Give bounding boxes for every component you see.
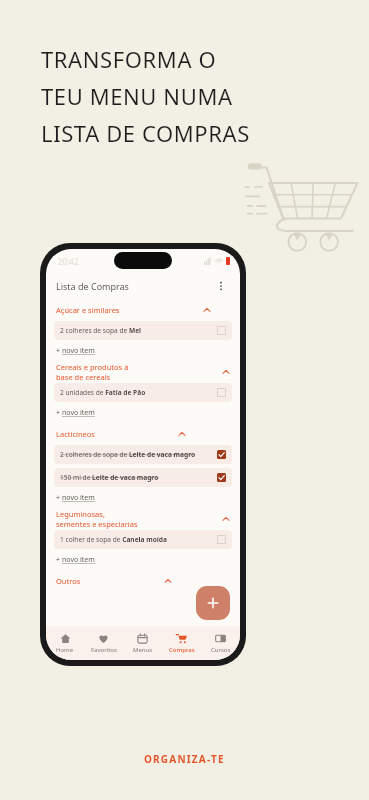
button[interactable]: Cursos [201, 626, 240, 660]
staticText: TRANSFORMA O [41, 44, 217, 74]
staticText: Compras [169, 646, 195, 654]
button[interactable]: 150 ml de Leite de vaca magro [54, 468, 232, 487]
staticText: Cereais e produtos à base de cereais [56, 362, 139, 382]
button[interactable]: 1 colher de sopa de Canela moída [54, 530, 232, 549]
button[interactable]: Cereais e produtos à base de cereais [54, 361, 232, 383]
staticText: ORGANIZA-TE [144, 752, 225, 766]
staticText: Cursos [211, 646, 231, 654]
button[interactable]: Unchecked [217, 326, 226, 335]
staticText: + [56, 346, 62, 356]
staticText: novo item [62, 555, 95, 565]
staticText: Outros [56, 576, 81, 586]
button[interactable]: More options [212, 277, 230, 295]
button[interactable]: Açúcar e similares [54, 299, 232, 321]
staticText: 20:42 [58, 256, 79, 267]
staticText: TEU MENU NUMA [41, 81, 233, 111]
staticText: Favoritos [91, 646, 117, 654]
button[interactable]: + [54, 487, 97, 508]
button[interactable]: Unchecked [217, 535, 226, 544]
staticText: Home [56, 646, 74, 654]
staticText: 1 colher de sopa de Canela moída [60, 535, 213, 544]
staticText: Açúcar e similares [56, 305, 120, 315]
staticText: Menus [133, 646, 153, 654]
staticText: + [56, 493, 62, 503]
staticText: + [56, 408, 62, 418]
button[interactable]: + [54, 340, 97, 361]
staticText: novo item [62, 346, 95, 356]
button[interactable]: Home [46, 626, 84, 660]
staticText: 2 colheres de sopa de Mel [60, 326, 213, 335]
staticText: novo item [62, 493, 95, 503]
button[interactable]: 2 colheres de sopa de Mel [54, 321, 232, 340]
button[interactable]: Compras [162, 626, 201, 660]
button[interactable]: + [54, 549, 97, 570]
button[interactable]: Lacticíneos [54, 423, 232, 445]
staticText: Lista de Compras [56, 280, 129, 292]
button[interactable]: + [54, 402, 97, 423]
button[interactable]: 2 unidades de Fatia de Pão [54, 383, 232, 402]
staticText: 2 colheres de sopa de Leite de vaca magr… [60, 450, 213, 459]
staticText: LISTA DE COMPRAS [41, 118, 250, 148]
staticText: 150 ml de Leite de vaca magro [60, 473, 213, 482]
staticText: novo item [62, 408, 95, 418]
staticText: 2 unidades de Fatia de Pão [60, 388, 213, 397]
staticText: + [56, 555, 62, 565]
staticText: Lacticíneos [56, 429, 95, 439]
button[interactable]: Favoritos [84, 626, 123, 660]
button[interactable]: Checked [217, 450, 226, 459]
button[interactable]: 2 colheres de sopa de Leite de vaca magr… [54, 445, 232, 464]
button[interactable]: Checked [217, 473, 226, 482]
button[interactable]: Leguminosas, sementes e especiarias [54, 508, 232, 530]
button[interactable]: Outros [54, 570, 232, 592]
button[interactable]: Unchecked [217, 388, 226, 397]
staticText: Leguminosas, sementes e especiarias [56, 509, 139, 529]
button[interactable]: Add item [196, 586, 230, 620]
button[interactable]: Menus [123, 626, 162, 660]
